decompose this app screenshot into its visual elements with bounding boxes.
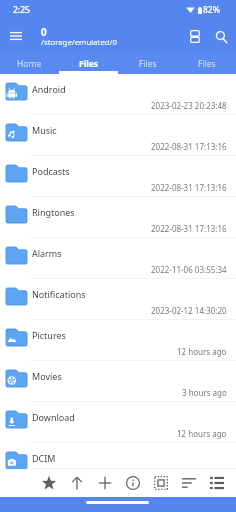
button[interactable]: Files [59, 54, 118, 74]
staticText: Pictures [32, 329, 66, 341]
staticText: 2023-02-12 14:30:20 [151, 305, 227, 316]
button[interactable]: Ringtones [0, 197, 236, 238]
staticText: 2022-08-31 17:13:16 [151, 223, 227, 234]
staticText: 0 [41, 25, 47, 39]
staticText: /storage/emulated/0 [41, 37, 117, 48]
button[interactable]: Change view [180, 22, 209, 51]
button[interactable]: Alarms [0, 238, 236, 279]
staticText: Files [79, 58, 99, 70]
staticText: Download [32, 411, 75, 423]
staticText: Notifications [32, 288, 86, 300]
staticText: 12 hours ago [177, 428, 227, 439]
button[interactable]: Android [0, 74, 236, 115]
button[interactable]: Search [207, 22, 236, 51]
staticText: 2022-08-31 17:13:16 [151, 141, 227, 152]
button[interactable]: Movies [0, 361, 236, 402]
staticText: Alarms [32, 247, 62, 259]
staticText: Podcasts [32, 165, 70, 177]
staticText: Android [32, 83, 66, 95]
button[interactable]: Music [0, 115, 236, 156]
button[interactable]: Notifications [0, 279, 236, 320]
button[interactable]: Download [0, 402, 236, 443]
staticText: 3 hours ago [182, 387, 227, 398]
button[interactable]: List view [204, 470, 230, 496]
staticText: Home [17, 58, 42, 70]
staticText: Files [139, 58, 157, 70]
staticText: 82% [203, 4, 220, 16]
button[interactable]: Pictures [0, 320, 236, 361]
button[interactable]: DCIM [0, 443, 236, 469]
button[interactable]: Open navigation drawer [4, 24, 28, 48]
staticText: 2022-08-31 17:13:16 [151, 182, 227, 193]
button[interactable]: Files [177, 54, 236, 74]
button[interactable]: Properties [120, 470, 146, 496]
staticText: Movies [32, 370, 62, 382]
staticText: Files [198, 58, 216, 70]
staticText: 2022-11-06 03:55:34 [151, 264, 227, 275]
staticText: DCIM [32, 452, 56, 464]
staticText: 12 hours ago [177, 346, 227, 357]
button[interactable]: Select [148, 470, 174, 496]
staticText: Ringtones [32, 206, 75, 218]
button[interactable]: Go up [64, 470, 90, 496]
staticText: Music [32, 124, 57, 136]
button[interactable]: Favourite [36, 470, 62, 496]
staticText: 2:25 [13, 4, 30, 16]
button[interactable]: Files [118, 54, 177, 74]
button[interactable]: Sort [176, 470, 202, 496]
button[interactable]: Home [0, 54, 59, 74]
button[interactable]: Podcasts [0, 156, 236, 197]
button[interactable]: Create new [92, 470, 118, 496]
staticText: 2023-02-23 20:23:48 [151, 100, 227, 111]
